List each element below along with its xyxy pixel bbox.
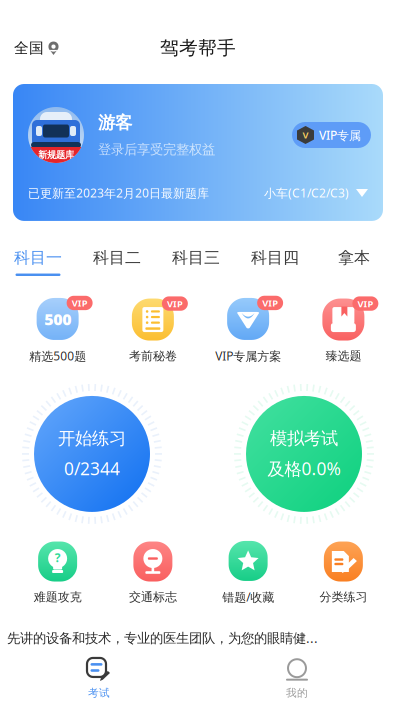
button[interactable]: VIP	[105, 298, 200, 363]
staticText: 开始练习	[58, 428, 126, 449]
staticText: 拿本	[338, 248, 370, 268]
staticText: 考试	[88, 686, 110, 699]
button[interactable]: 500	[10, 297, 105, 364]
staticText: 先讲的设备和技术，专业的医生团队，为您的眼睛健...	[7, 629, 318, 647]
staticText: 模拟考试	[270, 428, 338, 449]
staticText: 我的	[286, 686, 308, 699]
staticText: 新规题库	[38, 149, 74, 161]
button[interactable]: 分类练习	[296, 541, 391, 604]
staticText: 小车(C1/C2/C3)	[264, 185, 349, 201]
staticText: 科目四	[251, 248, 299, 268]
staticText: 全国	[14, 39, 44, 57]
staticText: VIP	[357, 297, 373, 310]
button[interactable]: 科目二	[93, 245, 141, 279]
button[interactable]: 我的	[198, 652, 396, 704]
button[interactable]: 交通标志	[105, 541, 200, 604]
button[interactable]: VIP	[296, 298, 391, 363]
staticText: V	[302, 129, 308, 141]
staticText: 0/2344	[64, 457, 120, 480]
staticText: VIP专属	[319, 127, 361, 143]
staticText: VIP	[72, 297, 88, 309]
button[interactable]: 科目三	[172, 245, 220, 279]
staticText: 分类练习	[319, 589, 367, 604]
staticText: 及格0.0%	[267, 457, 340, 480]
staticText: 臻选题	[325, 349, 361, 363]
staticText: 游客	[98, 112, 132, 133]
staticText: VIP	[167, 297, 183, 310]
button[interactable]: 错题/收藏	[200, 541, 296, 605]
staticText: 科目三	[172, 248, 220, 268]
staticText: VIP专属方案	[215, 348, 281, 364]
staticText: ?	[55, 550, 61, 565]
button[interactable]: 拿本	[330, 245, 378, 279]
staticText: VIP	[262, 297, 278, 309]
button[interactable]: 科目一	[14, 245, 62, 279]
staticText: 考前秘卷	[129, 349, 177, 363]
button[interactable]: 考试	[0, 652, 198, 704]
staticText: 科目二	[93, 248, 141, 268]
button[interactable]: 新规题库	[13, 84, 383, 221]
button[interactable]: 开始练习	[22, 384, 162, 524]
staticText: 精选500题	[29, 348, 86, 364]
staticText: 科目一	[14, 248, 62, 268]
staticText: 交通标志	[129, 589, 177, 604]
staticText: 登录后享受完整权益	[98, 141, 215, 158]
staticText: 难题攻克	[34, 589, 82, 604]
staticText: 500	[44, 308, 71, 329]
staticText: 驾考帮手	[160, 36, 236, 59]
staticText: 已更新至2023年2月20日最新题库	[28, 185, 209, 201]
button[interactable]: 全国	[0, 29, 73, 67]
staticText: 错题/收藏	[222, 589, 274, 605]
button[interactable]: ?	[10, 541, 105, 604]
button[interactable]: 模拟考试	[234, 384, 374, 524]
button[interactable]: 科目四	[251, 245, 299, 279]
button[interactable]: VIP	[200, 297, 296, 364]
